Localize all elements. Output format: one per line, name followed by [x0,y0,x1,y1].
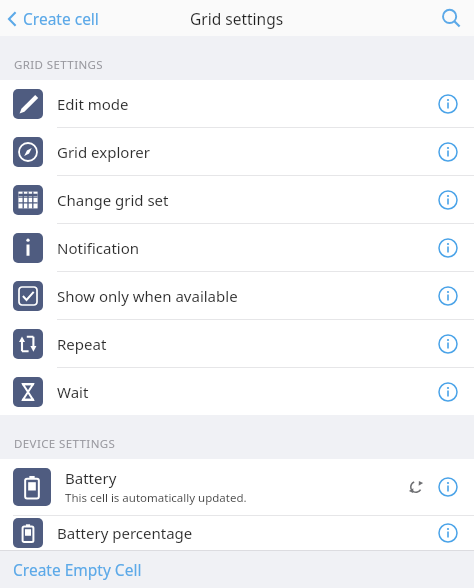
button[interactable]: Create cell [0,4,109,33]
button[interactable]: Info [435,474,461,500]
button[interactable]: Search [436,3,466,33]
button[interactable]: Repeat [0,320,474,367]
button[interactable]: Info [435,139,461,165]
staticText: Grid settings [190,8,284,29]
staticText: DEVICE SETTINGS [14,436,116,452]
button[interactable]: Info [435,331,461,357]
button[interactable]: Refresh [403,474,429,500]
staticText: Create Empty Cell [13,559,142,580]
button[interactable]: Info [435,520,461,546]
staticText: Edit mode [57,94,435,114]
staticText: GRID SETTINGS [14,57,104,73]
button[interactable]: Notification [0,224,474,271]
staticText: Battery [65,468,117,488]
button[interactable]: Battery [0,459,474,515]
staticText: Show only when available [57,286,435,306]
button[interactable]: Battery percentage [0,516,474,550]
button[interactable]: Create Empty Cell [0,551,474,588]
button[interactable]: Grid explorer [0,128,474,175]
staticText: Create cell [23,8,99,29]
staticText: Grid explorer [57,142,435,162]
staticText: Notification [57,238,435,258]
staticText: Change grid set [57,190,435,210]
button[interactable]: Change grid set [0,176,474,223]
button[interactable]: Info [435,91,461,117]
button[interactable]: Info [435,283,461,309]
staticText: Battery percentage [57,523,435,543]
button[interactable]: Info [435,235,461,261]
staticText: This cell is automatically updated. [65,490,247,506]
staticText: Wait [57,382,435,402]
button[interactable]: Info [435,379,461,405]
button[interactable]: Edit mode [0,80,474,127]
button[interactable]: Info [435,187,461,213]
button[interactable]: Wait [0,368,474,415]
button[interactable]: Show only when available [0,272,474,319]
staticText: Repeat [57,334,435,354]
